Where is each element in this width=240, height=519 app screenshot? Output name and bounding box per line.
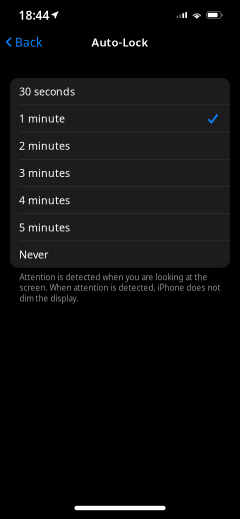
button[interactable]: Back bbox=[0, 29, 50, 55]
button[interactable]: 3 minutes bbox=[10, 160, 230, 186]
button[interactable]: 2 minutes bbox=[10, 132, 230, 159]
staticText: 5 minutes bbox=[19, 220, 70, 234]
button[interactable]: 4 minutes bbox=[10, 187, 230, 213]
button[interactable]: 1 minute bbox=[10, 105, 230, 132]
staticText: 18:44 bbox=[18, 7, 49, 23]
staticText: 30 seconds bbox=[19, 84, 75, 98]
button[interactable]: Never bbox=[10, 241, 230, 268]
staticText: 1 minute bbox=[19, 111, 65, 126]
staticText: Attention is detected when you are looki… bbox=[19, 272, 220, 304]
staticText: Back bbox=[15, 34, 42, 50]
staticText: 4 minutes bbox=[19, 193, 70, 207]
staticText: Auto-Lock bbox=[91, 34, 148, 50]
staticText: Never bbox=[19, 247, 48, 262]
button[interactable]: 30 seconds bbox=[10, 78, 230, 105]
staticText: 2 minutes bbox=[19, 139, 70, 153]
staticText: 3 minutes bbox=[19, 166, 70, 180]
button[interactable]: 5 minutes bbox=[10, 214, 230, 241]
